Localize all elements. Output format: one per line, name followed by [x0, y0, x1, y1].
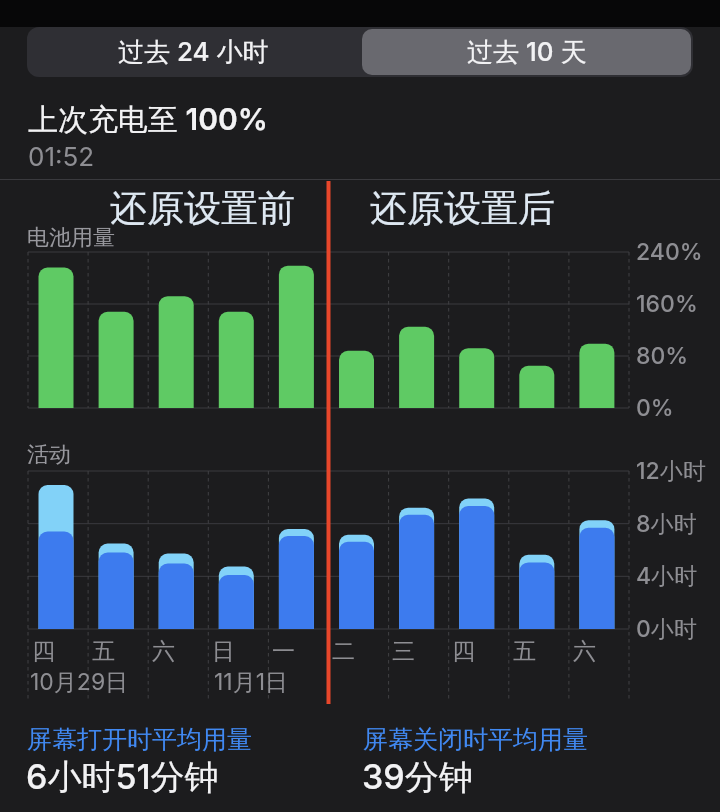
staticText: 六: [573, 637, 596, 663]
button[interactable]: 过去 24 小时: [27, 27, 360, 77]
staticText: 六: [152, 637, 175, 663]
staticText: 6小时51分钟: [26, 756, 219, 799]
staticText: 160%: [636, 290, 698, 318]
staticText: 屏幕关闭时平均用量: [363, 724, 588, 755]
button[interactable]: 过去 10 天: [362, 29, 691, 75]
staticText: 三: [392, 637, 415, 663]
staticText: 电池用量: [27, 224, 115, 252]
staticText: 五: [513, 637, 536, 663]
staticText: 8小时: [636, 510, 697, 538]
staticText: 过去 10 天: [467, 36, 587, 69]
staticText: 还原设置前: [110, 185, 295, 232]
staticText: 12小时: [636, 457, 706, 485]
staticText: 39分钟: [362, 756, 473, 799]
staticText: 11月1日: [214, 668, 289, 697]
staticText: 四: [32, 637, 55, 663]
staticText: 10月29日: [30, 668, 129, 697]
staticText: 240%: [636, 238, 703, 266]
staticText: 0%: [636, 394, 674, 422]
staticText: 四: [452, 637, 475, 663]
staticText: 0小时: [636, 615, 697, 643]
staticText: 五: [92, 637, 115, 663]
staticText: 活动: [27, 441, 71, 469]
staticText: 上次充电至 100%: [28, 101, 268, 139]
staticText: 01:52: [28, 141, 95, 172]
staticText: 一: [272, 637, 295, 663]
staticText: 二: [332, 637, 355, 663]
staticText: 日: [212, 637, 235, 663]
staticText: 过去 24 小时: [118, 36, 269, 69]
staticText: 80%: [636, 342, 689, 370]
staticText: 还原设置后: [370, 185, 555, 232]
staticText: 屏幕打开时平均用量: [27, 724, 252, 755]
staticText: 4小时: [636, 562, 698, 590]
